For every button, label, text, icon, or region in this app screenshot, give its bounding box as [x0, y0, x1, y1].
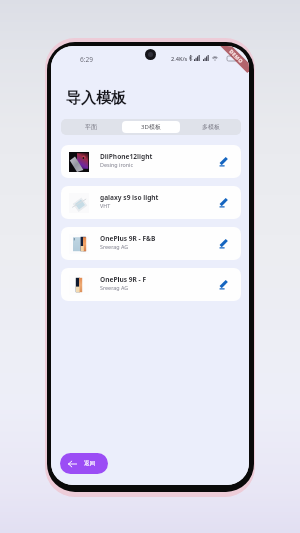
staticText: 返回 [84, 460, 96, 467]
staticText: Sreerag AG [100, 243, 129, 250]
staticText: DEMO [227, 48, 244, 65]
button[interactable]: Edit [213, 192, 233, 212]
staticText: 平面 [85, 123, 97, 131]
button[interactable]: 返回 [60, 453, 108, 474]
staticText: galaxy s9 iso light [100, 193, 159, 202]
staticText: Sreerag AG [100, 284, 129, 291]
button[interactable]: galaxy s9 iso light [61, 186, 241, 219]
staticText: VHT [100, 202, 111, 209]
staticText: 6:29 [80, 55, 94, 64]
button[interactable]: OnePlus 9R - F [61, 268, 241, 301]
button[interactable]: Edit [213, 151, 233, 171]
button[interactable]: 平面 [62, 121, 120, 133]
staticText: DiiPhone12light [100, 152, 153, 161]
staticText: 2.4K/s [171, 55, 188, 63]
staticText: Desing ironic [100, 161, 134, 168]
staticText: OnePlus 9R - F&B [100, 234, 156, 243]
button[interactable]: DiiPhone12light [61, 145, 241, 178]
button[interactable]: OnePlus 9R - F&B [61, 227, 241, 260]
staticText: OnePlus 9R - F [100, 275, 147, 284]
button[interactable]: 多模板 [182, 121, 240, 133]
staticText: 3D模板 [141, 123, 161, 131]
staticText: 多模板 [202, 123, 220, 131]
button[interactable]: 3D模板 [122, 121, 180, 133]
button[interactable]: Edit [213, 233, 233, 253]
staticText: 导入模板 [66, 89, 126, 108]
button[interactable]: Edit [213, 274, 233, 294]
